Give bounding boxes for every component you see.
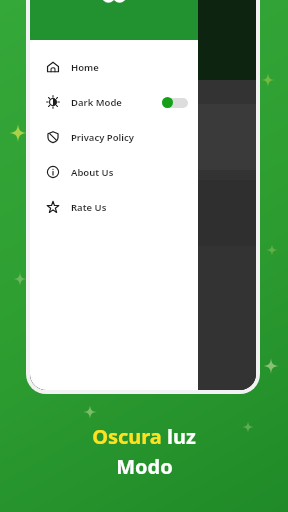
button[interactable]: Rate Us: [30, 190, 198, 224]
staticText: Rate Us: [71, 201, 107, 214]
button[interactable]: About Us: [30, 155, 198, 189]
staticText: Modo: [116, 453, 173, 480]
button[interactable]: Privacy Policy: [30, 120, 198, 154]
staticText: Home: [71, 61, 99, 74]
button[interactable]: Dark Mode: [30, 85, 198, 119]
staticText: Privacy Policy: [71, 131, 134, 144]
staticText: About Us: [71, 166, 114, 179]
staticText: Oscura luz: [92, 423, 196, 450]
button[interactable]: Home: [30, 50, 198, 84]
staticText: Dark Mode: [71, 96, 122, 109]
